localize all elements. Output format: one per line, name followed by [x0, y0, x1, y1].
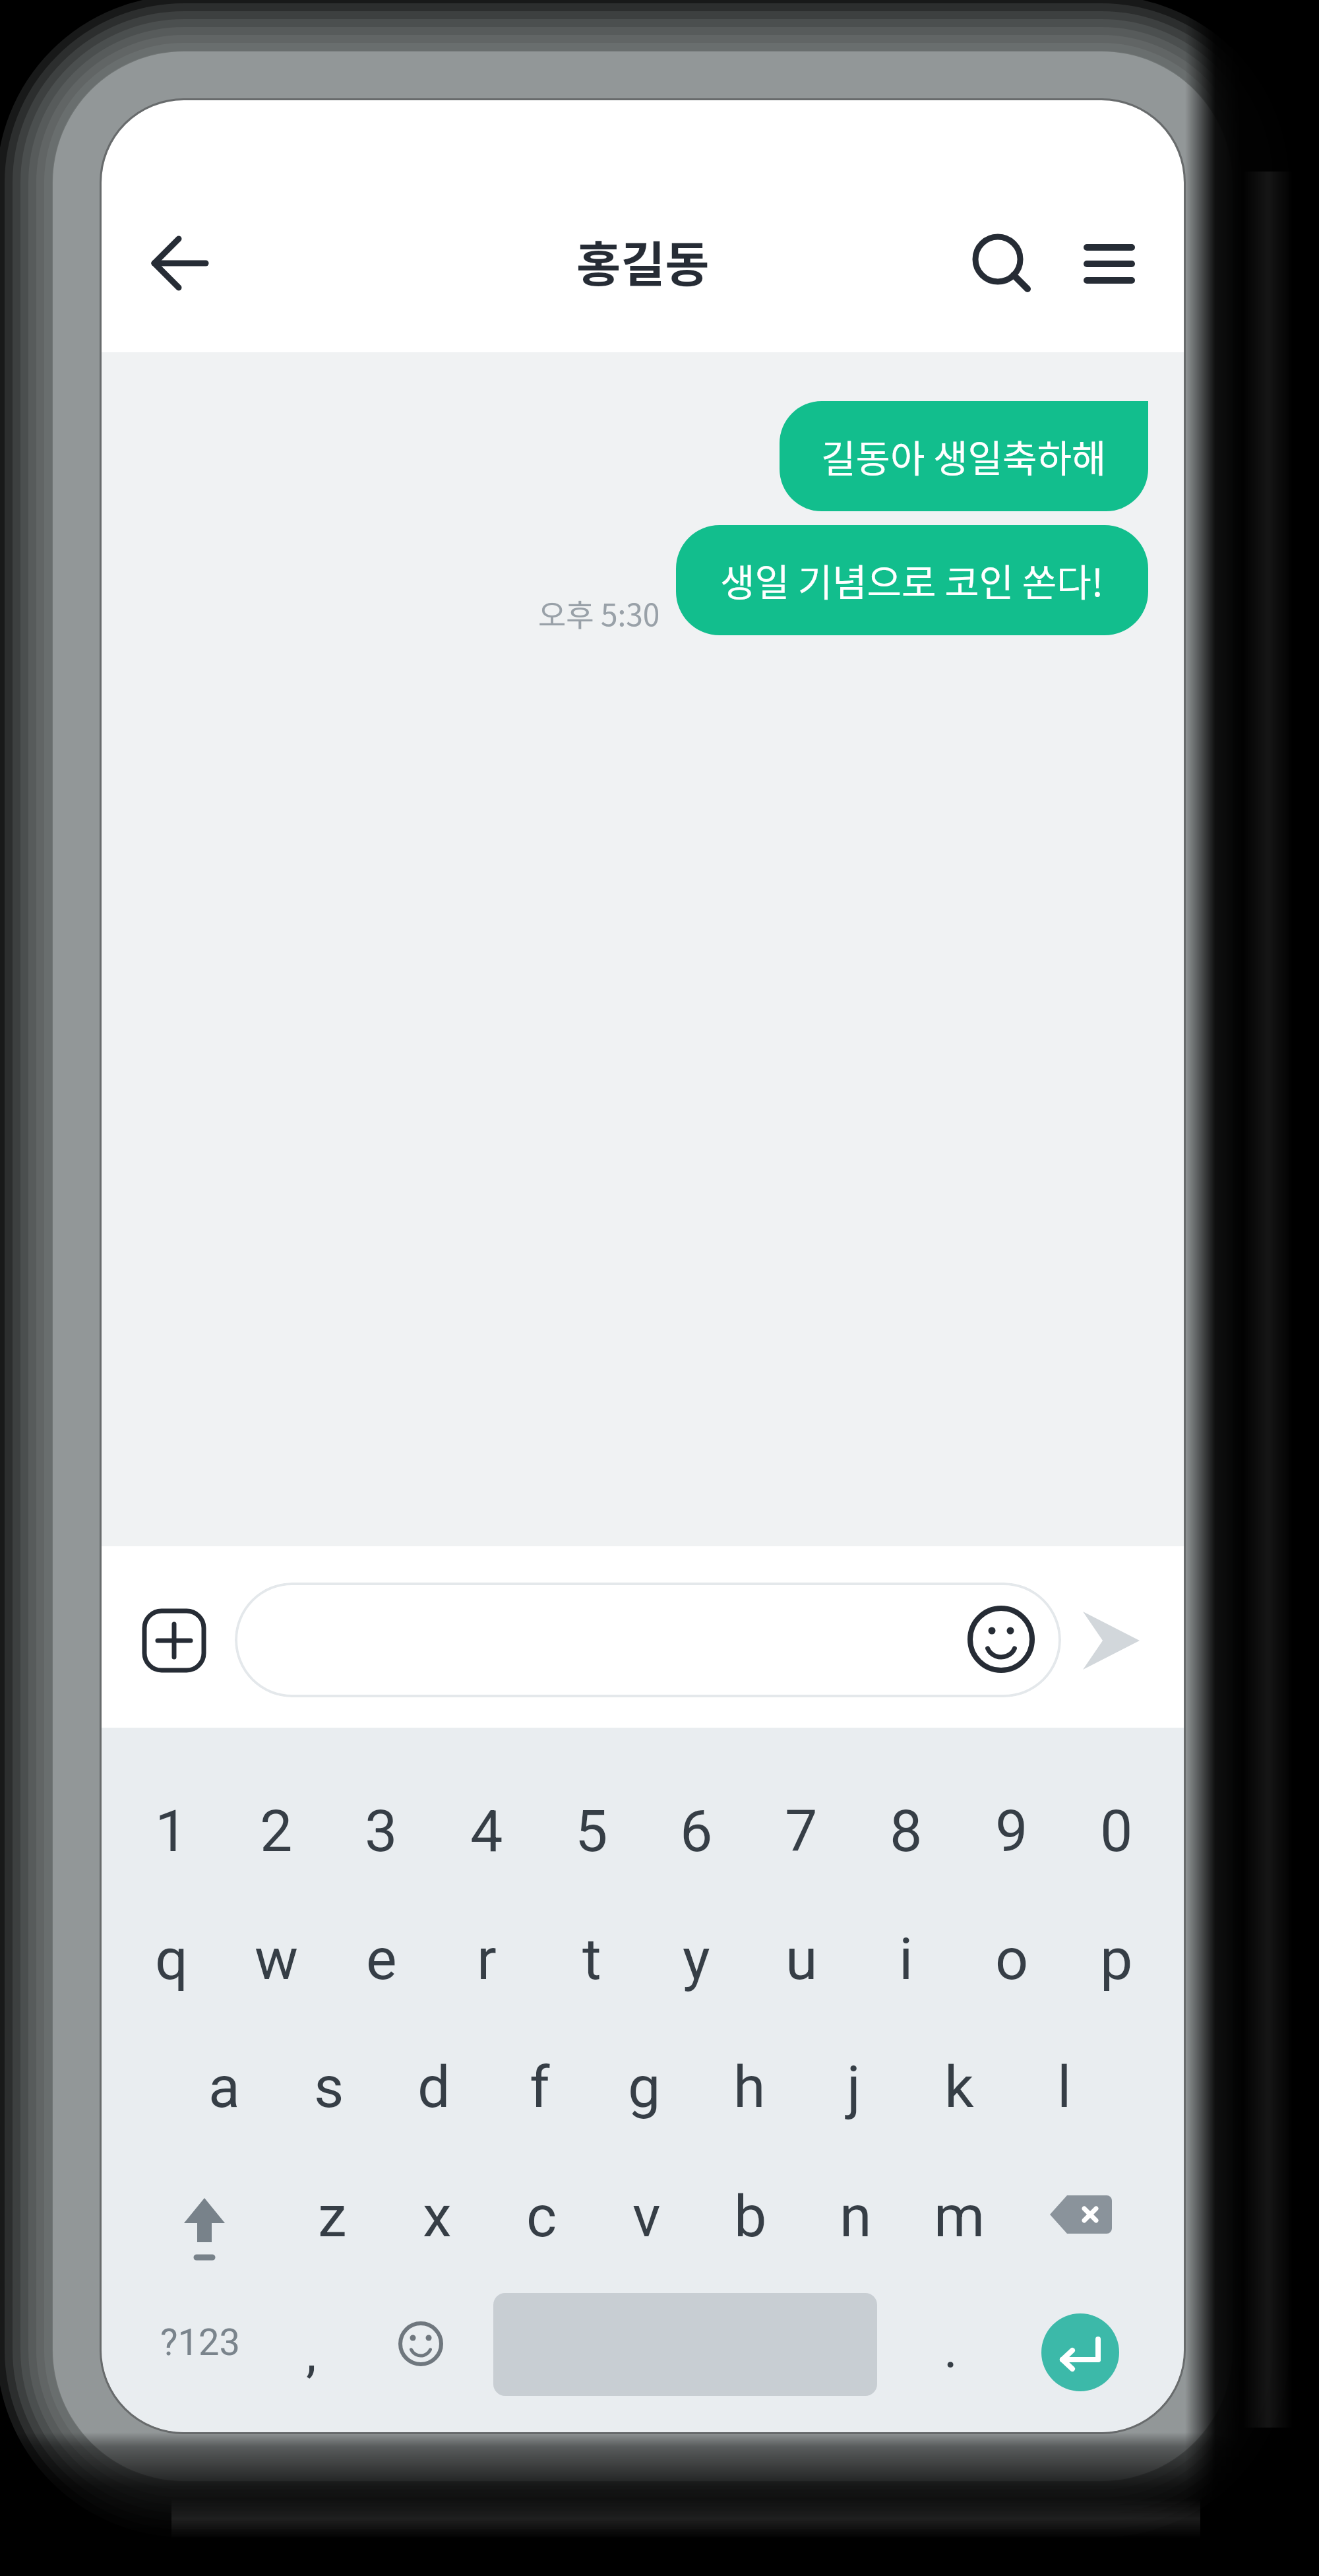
- staticText: l: [1057, 2053, 1072, 2121]
- staticText: 6: [680, 1797, 713, 1865]
- button[interactable]: b: [701, 2166, 800, 2265]
- button[interactable]: [1065, 1597, 1157, 1689]
- staticText: d: [417, 2053, 450, 2121]
- staticText: u: [785, 1925, 818, 1993]
- button[interactable]: 0: [1067, 1781, 1166, 1880]
- button[interactable]: o: [962, 1909, 1061, 2008]
- button[interactable]: ?123: [134, 2300, 266, 2385]
- button[interactable]: c: [492, 2166, 591, 2265]
- button[interactable]: j: [805, 2037, 904, 2136]
- button[interactable]: 4: [437, 1781, 536, 1880]
- staticText: n: [840, 2182, 872, 2250]
- button[interactable]: y: [647, 1909, 746, 2008]
- button[interactable]: [1041, 2313, 1119, 2391]
- staticText: 홍길동: [576, 226, 710, 296]
- button[interactable]: ,: [275, 2311, 348, 2397]
- staticText: 7: [785, 1797, 818, 1865]
- button[interactable]: 5: [542, 1781, 641, 1880]
- staticText: q: [155, 1925, 189, 1993]
- button[interactable]: 9: [962, 1781, 1061, 1880]
- button[interactable]: u: [752, 1909, 851, 2008]
- button[interactable]: z: [283, 2166, 382, 2265]
- staticText: j: [847, 2053, 861, 2121]
- button[interactable]: .: [915, 2307, 987, 2393]
- button[interactable]: 7: [752, 1781, 851, 1880]
- staticText: 0: [1100, 1797, 1133, 1865]
- button[interactable]: m: [910, 2166, 1009, 2265]
- button[interactable]: i: [857, 1909, 956, 2008]
- staticText: 9: [995, 1797, 1028, 1865]
- staticText: 4: [470, 1797, 503, 1865]
- button[interactable]: 8: [857, 1781, 956, 1880]
- button[interactable]: [1034, 2168, 1126, 2261]
- staticText: i: [899, 1925, 913, 1993]
- staticText: a: [208, 2053, 240, 2121]
- button[interactable]: [493, 2293, 877, 2396]
- staticText: 생일 기념으로 코인 쏜다!: [720, 553, 1104, 608]
- button[interactable]: w: [227, 1909, 326, 2008]
- button[interactable]: [1063, 218, 1155, 310]
- button[interactable]: [956, 1593, 1049, 1685]
- button[interactable]: s: [280, 2037, 379, 2136]
- button[interactable]: 2: [227, 1781, 326, 1880]
- button[interactable]: l: [1015, 2037, 1114, 2136]
- staticText: ,: [306, 2323, 317, 2385]
- button[interactable]: [375, 2298, 467, 2390]
- button[interactable]: d: [384, 2037, 483, 2136]
- staticText: x: [423, 2182, 452, 2250]
- staticText: 오후 5:30: [538, 591, 660, 635]
- button[interactable]: x: [388, 2166, 487, 2265]
- button[interactable]: f: [490, 2037, 589, 2136]
- staticText: 길동아 생일축하해: [821, 429, 1107, 484]
- button[interactable]: [235, 1583, 1061, 1697]
- button[interactable]: g: [595, 2037, 694, 2136]
- staticText: 8: [890, 1797, 923, 1865]
- button[interactable]: 6: [647, 1781, 746, 1880]
- staticText: o: [995, 1925, 1029, 1993]
- staticText: z: [318, 2182, 347, 2250]
- button[interactable]: n: [806, 2166, 905, 2265]
- staticText: ?123: [160, 2321, 240, 2364]
- button[interactable]: 1: [122, 1781, 221, 1880]
- button[interactable]: k: [909, 2037, 1008, 2136]
- staticText: 5: [575, 1797, 608, 1865]
- staticText: t: [582, 1925, 601, 1993]
- staticText: s: [314, 2053, 344, 2121]
- staticText: f: [530, 2053, 550, 2121]
- button[interactable]: [953, 214, 1045, 307]
- staticText: p: [1100, 1925, 1133, 1993]
- button[interactable]: [135, 218, 228, 310]
- button[interactable]: [158, 2174, 251, 2266]
- staticText: c: [526, 2182, 557, 2250]
- staticText: 2: [260, 1797, 293, 1865]
- button[interactable]: p: [1067, 1909, 1166, 2008]
- button[interactable]: e: [332, 1909, 431, 2008]
- staticText: h: [733, 2053, 766, 2121]
- staticText: v: [632, 2182, 661, 2250]
- staticText: 3: [365, 1797, 398, 1865]
- button[interactable]: a: [175, 2037, 274, 2136]
- staticText: b: [734, 2182, 767, 2250]
- staticText: m: [934, 2182, 985, 2250]
- staticText: g: [628, 2053, 661, 2121]
- staticText: 1: [155, 1797, 188, 1865]
- staticText: r: [477, 1925, 497, 1993]
- staticText: y: [683, 1925, 710, 1993]
- button[interactable]: [129, 1593, 222, 1685]
- staticText: e: [366, 1925, 397, 1993]
- button[interactable]: 3: [332, 1781, 431, 1880]
- button[interactable]: t: [542, 1909, 641, 2008]
- staticText: .: [944, 2319, 958, 2381]
- button[interactable]: h: [700, 2037, 799, 2136]
- button[interactable]: q: [122, 1909, 221, 2008]
- button[interactable]: r: [437, 1909, 536, 2008]
- button[interactable]: v: [597, 2166, 696, 2265]
- staticText: w: [255, 1925, 299, 1993]
- staticText: k: [944, 2053, 974, 2121]
